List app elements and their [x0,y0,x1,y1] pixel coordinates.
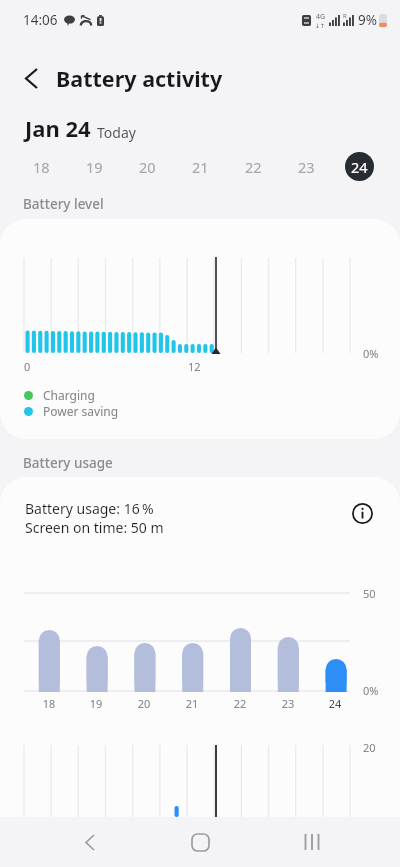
staticText: Charging [43,387,95,403]
button[interactable]: 21 [186,152,215,181]
staticText: Battery usage [23,454,113,472]
staticText: 22 [230,696,250,711]
staticText: 18 [39,696,59,711]
staticText: 24 [351,157,368,177]
staticText: 20 [363,740,376,755]
staticText: 23 [278,696,298,711]
staticText: Battery activity [56,64,223,93]
staticText: 23 [298,157,315,177]
staticText: 9% [358,11,377,29]
button[interactable]: 24 [345,152,374,181]
staticText: Power saving [43,403,119,419]
button[interactable]: 19 [80,152,109,181]
staticText: 24 [325,696,345,711]
staticText: Battery usage: 16 % [25,499,154,518]
staticText: 20 [139,157,156,177]
staticText: 22 [245,157,262,177]
staticText: Today [97,123,136,142]
staticText: 21 [182,696,202,711]
staticText: 50 [363,586,376,601]
staticText: 19 [86,157,103,177]
staticText: R [343,12,347,20]
staticText: 21 [192,157,209,177]
staticText: 14:06 [23,11,58,29]
staticText: ↓↑ [315,22,326,29]
button[interactable]: Info [349,500,375,526]
button[interactable]: 22 [239,152,268,181]
button[interactable]: Home [178,820,222,864]
staticText: 0% [363,683,379,698]
staticText: 4G [316,12,326,22]
button[interactable]: 20 [133,152,162,181]
staticText: Screen on time: 50 m [25,518,164,537]
button[interactable]: 18 [27,152,56,181]
staticText: 12 [188,359,201,374]
button[interactable]: Recents [290,820,334,864]
staticText: Jan 24 [25,113,91,143]
button[interactable]: Back [68,820,112,864]
staticText: Battery level [23,195,104,213]
staticText: 18 [33,157,50,177]
button[interactable]: Back [13,60,49,96]
staticText: 0 [24,359,31,374]
staticText: 20 [134,696,154,711]
staticText: 19 [86,696,106,711]
staticText: 0% [363,346,379,361]
button[interactable]: 23 [292,152,321,181]
